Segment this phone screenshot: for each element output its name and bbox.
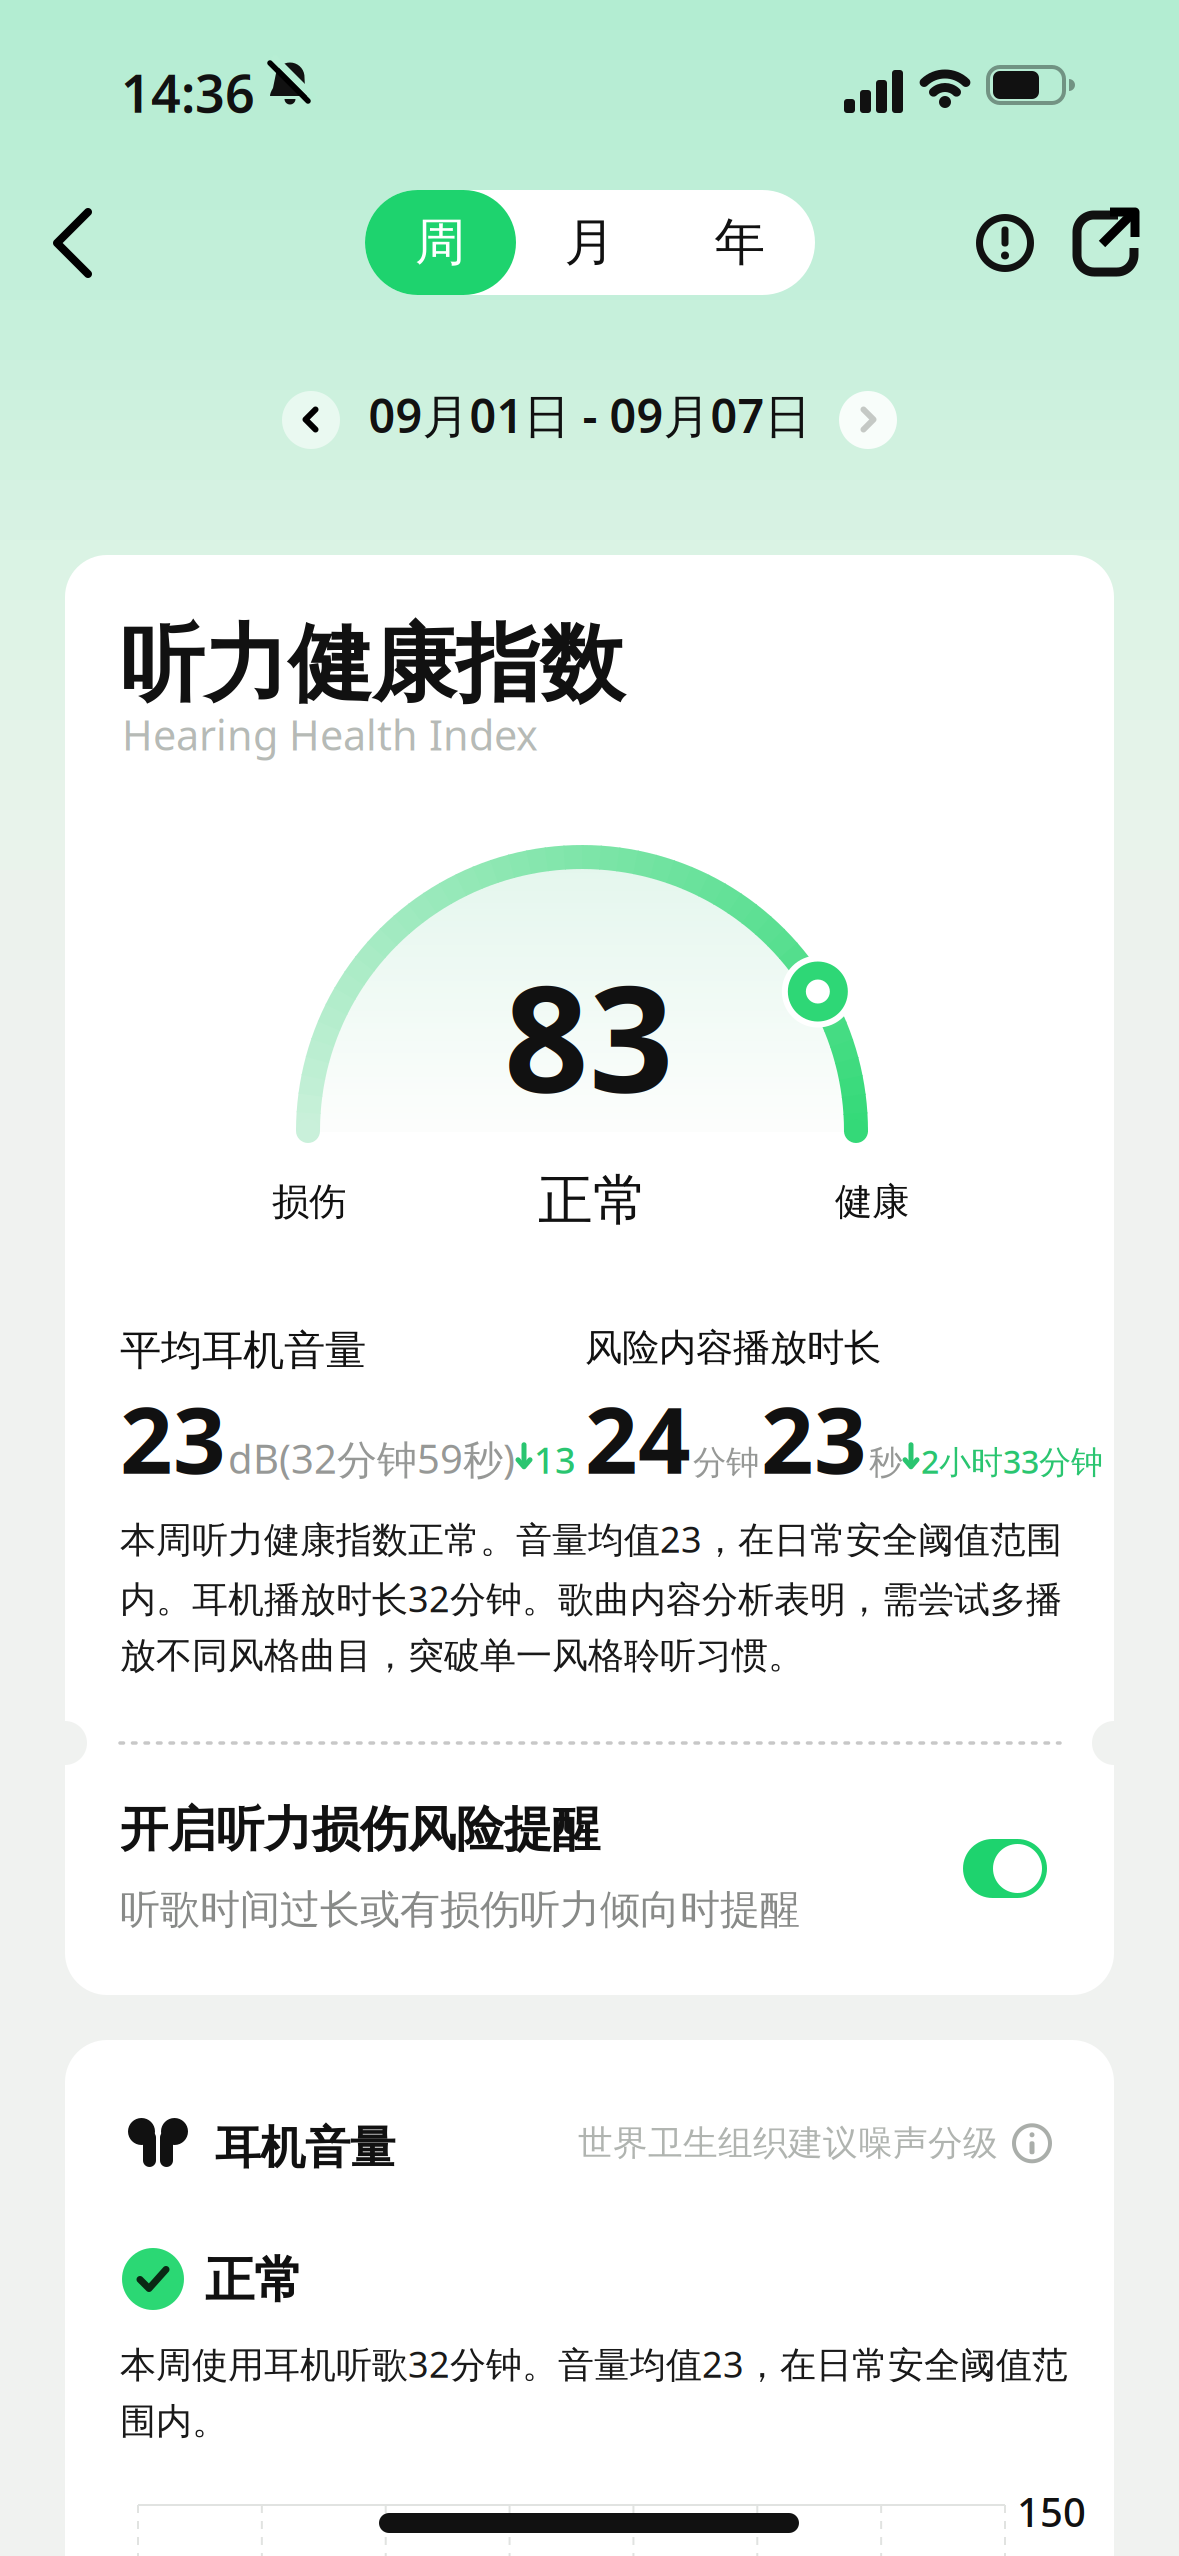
staticText: 听力健康指数 <box>120 613 624 716</box>
staticText: 24 <box>585 1377 691 1499</box>
button[interactable]: 月 <box>515 190 665 295</box>
staticText: 风险内容播放时长 <box>585 1325 881 1371</box>
staticText: 周 <box>415 211 466 274</box>
staticText: 83 <box>504 937 674 1133</box>
button[interactable]: 周 <box>365 190 516 295</box>
staticText: 放不同风格曲目，突破单一风格聆听习惯。 <box>120 1634 804 1678</box>
staticText: 150 <box>1017 2485 1086 2538</box>
staticText: 正常 <box>538 1167 648 1234</box>
staticText: 耳机音量 <box>215 2120 395 2176</box>
staticText: 本周听力健康指数正常。音量均值23，在日常安全阈值范围 <box>120 1515 1062 1563</box>
staticText: 09月01日 - 09月07日 <box>368 384 811 446</box>
staticText: Hearing Health Index <box>122 707 538 762</box>
button[interactable]: 年 <box>665 190 815 295</box>
button[interactable]: Back <box>54 209 94 279</box>
staticText: dB(32分钟59秒) <box>228 1432 515 1485</box>
staticText: 23 <box>120 1377 226 1499</box>
staticText: 月 <box>564 211 615 274</box>
button[interactable]: Info <box>976 214 1034 272</box>
button[interactable]: 世界卫生组织建议噪声分级 <box>578 2122 1052 2165</box>
staticText: 秒 <box>869 1442 902 1483</box>
staticText: 本周使用耳机听歌32分钟。音量均值23，在日常安全阈值范 <box>120 2340 1068 2388</box>
button[interactable]: 开启听力损伤风险提醒 <box>963 1839 1047 1898</box>
staticText: 内。耳机播放时长32分钟。歌曲内容分析表明，需尝试多播 <box>120 1574 1062 1622</box>
staticText: 23 <box>761 1377 867 1499</box>
button[interactable]: Previous week <box>282 391 340 449</box>
staticText: 分钟 <box>693 1442 759 1483</box>
staticText: 正常 <box>205 2250 303 2311</box>
staticText: 14:36 <box>121 58 255 127</box>
button[interactable]: Share <box>1074 212 1136 274</box>
staticText: 围内。 <box>120 2399 228 2443</box>
staticText: 年 <box>714 211 765 274</box>
staticText: 世界卫生组织建议噪声分级 <box>578 2122 998 2165</box>
staticText: 健康 <box>835 1179 909 1225</box>
button[interactable]: Next week <box>839 391 897 449</box>
staticText: 开启听力损伤风险提醒 <box>120 1800 600 1859</box>
staticText: 听歌时间过长或有损伤听力倾向时提醒 <box>120 1885 800 1934</box>
staticText: 损伤 <box>272 1179 346 1225</box>
staticText: 2小时33分钟 <box>921 1440 1103 1483</box>
staticText: 平均耳机音量 <box>120 1325 366 1376</box>
staticText: 13 <box>534 1436 576 1484</box>
